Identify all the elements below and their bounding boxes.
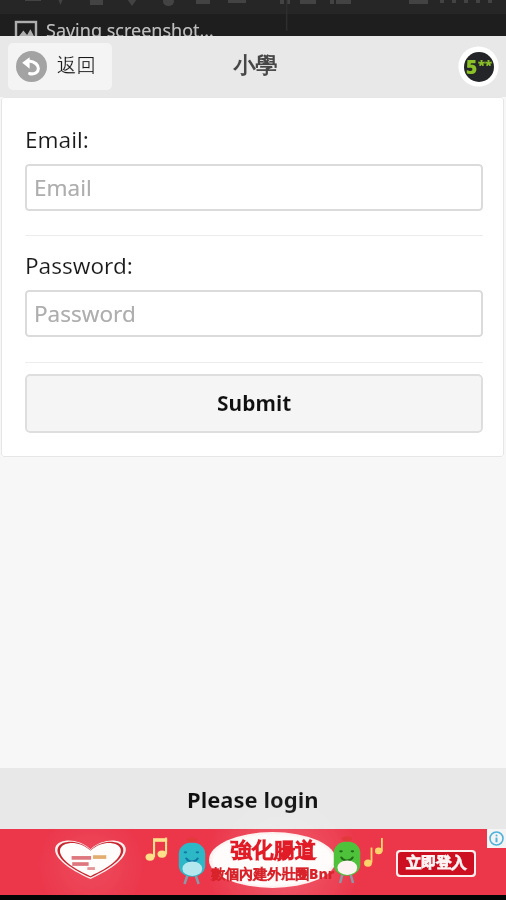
staticText: Password: [25,250,133,281]
staticText: ** [478,55,492,73]
staticText: Email [34,172,92,203]
button[interactable]: 立即登入 [398,852,474,875]
staticText: 5 [466,54,478,80]
button[interactable]: Email [25,164,483,211]
button[interactable]: 返回 [8,43,112,90]
button[interactable]: Ad info [487,829,506,848]
staticText: Password [34,298,136,329]
staticText: 強化腸道 [230,837,316,864]
staticText: 小學 [233,52,277,80]
staticText: 返回 [57,53,96,78]
staticText: 數個內建外壯圈Bnr [211,864,335,883]
staticText: Saving screenshot… [46,18,214,43]
staticText: Email: [25,124,89,155]
button[interactable]: Logo [458,46,499,87]
button[interactable]: Password [25,290,483,337]
staticText: Submit [217,389,292,418]
button[interactable]: Submit [25,374,483,433]
staticText: 立即登入 [406,854,466,873]
button[interactable]: Advertisement [0,829,506,895]
staticText: Please login [187,784,319,814]
